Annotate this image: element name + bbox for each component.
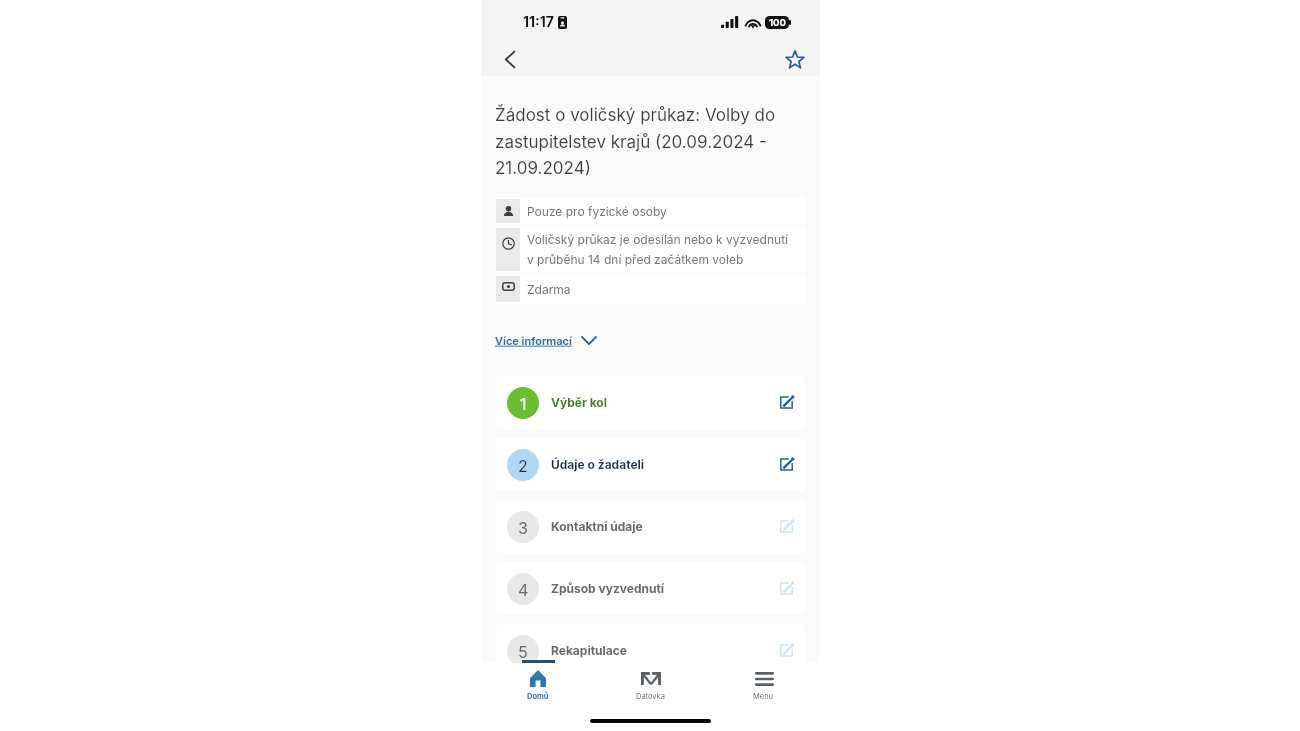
- button[interactable]: 2: [496, 438, 805, 491]
- button[interactable]: Více informací: [495, 334, 597, 347]
- staticText: Více informací: [495, 334, 572, 347]
- button[interactable]: 5: [496, 624, 805, 677]
- staticText: Zdarma: [527, 282, 571, 297]
- button[interactable]: 4: [496, 562, 805, 615]
- staticText: 3: [518, 518, 528, 537]
- staticText: 2: [518, 456, 528, 475]
- button[interactable]: 1: [496, 376, 805, 429]
- staticText: Údaje o žadateli: [551, 457, 645, 472]
- staticText: 5: [518, 642, 528, 661]
- staticText: Domů: [527, 692, 549, 701]
- staticText: 11:17: [523, 13, 554, 30]
- staticText: Žádost o voličský průkaz: Volby do zastu…: [495, 105, 798, 178]
- staticText: Datovka: [636, 692, 665, 701]
- staticText: Výběr kol: [551, 395, 607, 410]
- staticText: 100: [769, 17, 786, 28]
- staticText: Menu: [753, 692, 774, 701]
- staticText: 1: [520, 394, 527, 413]
- button[interactable]: Back: [494, 43, 526, 75]
- button[interactable]: Datovka: [594, 663, 707, 731]
- staticText: Voličský průkaz je odesílán nebo k vyzve…: [527, 232, 788, 267]
- button[interactable]: 3: [496, 500, 805, 553]
- button[interactable]: Add to favourites: [779, 43, 811, 75]
- button[interactable]: Domů: [481, 663, 594, 731]
- staticText: Kontaktní údaje: [551, 519, 643, 534]
- button[interactable]: Menu: [707, 663, 820, 731]
- staticText: 4: [518, 580, 529, 599]
- staticText: Způsob vyzvednutí: [551, 581, 665, 596]
- staticText: Rekapitulace: [551, 643, 627, 658]
- staticText: Pouze pro fyzické osoby: [527, 204, 667, 219]
